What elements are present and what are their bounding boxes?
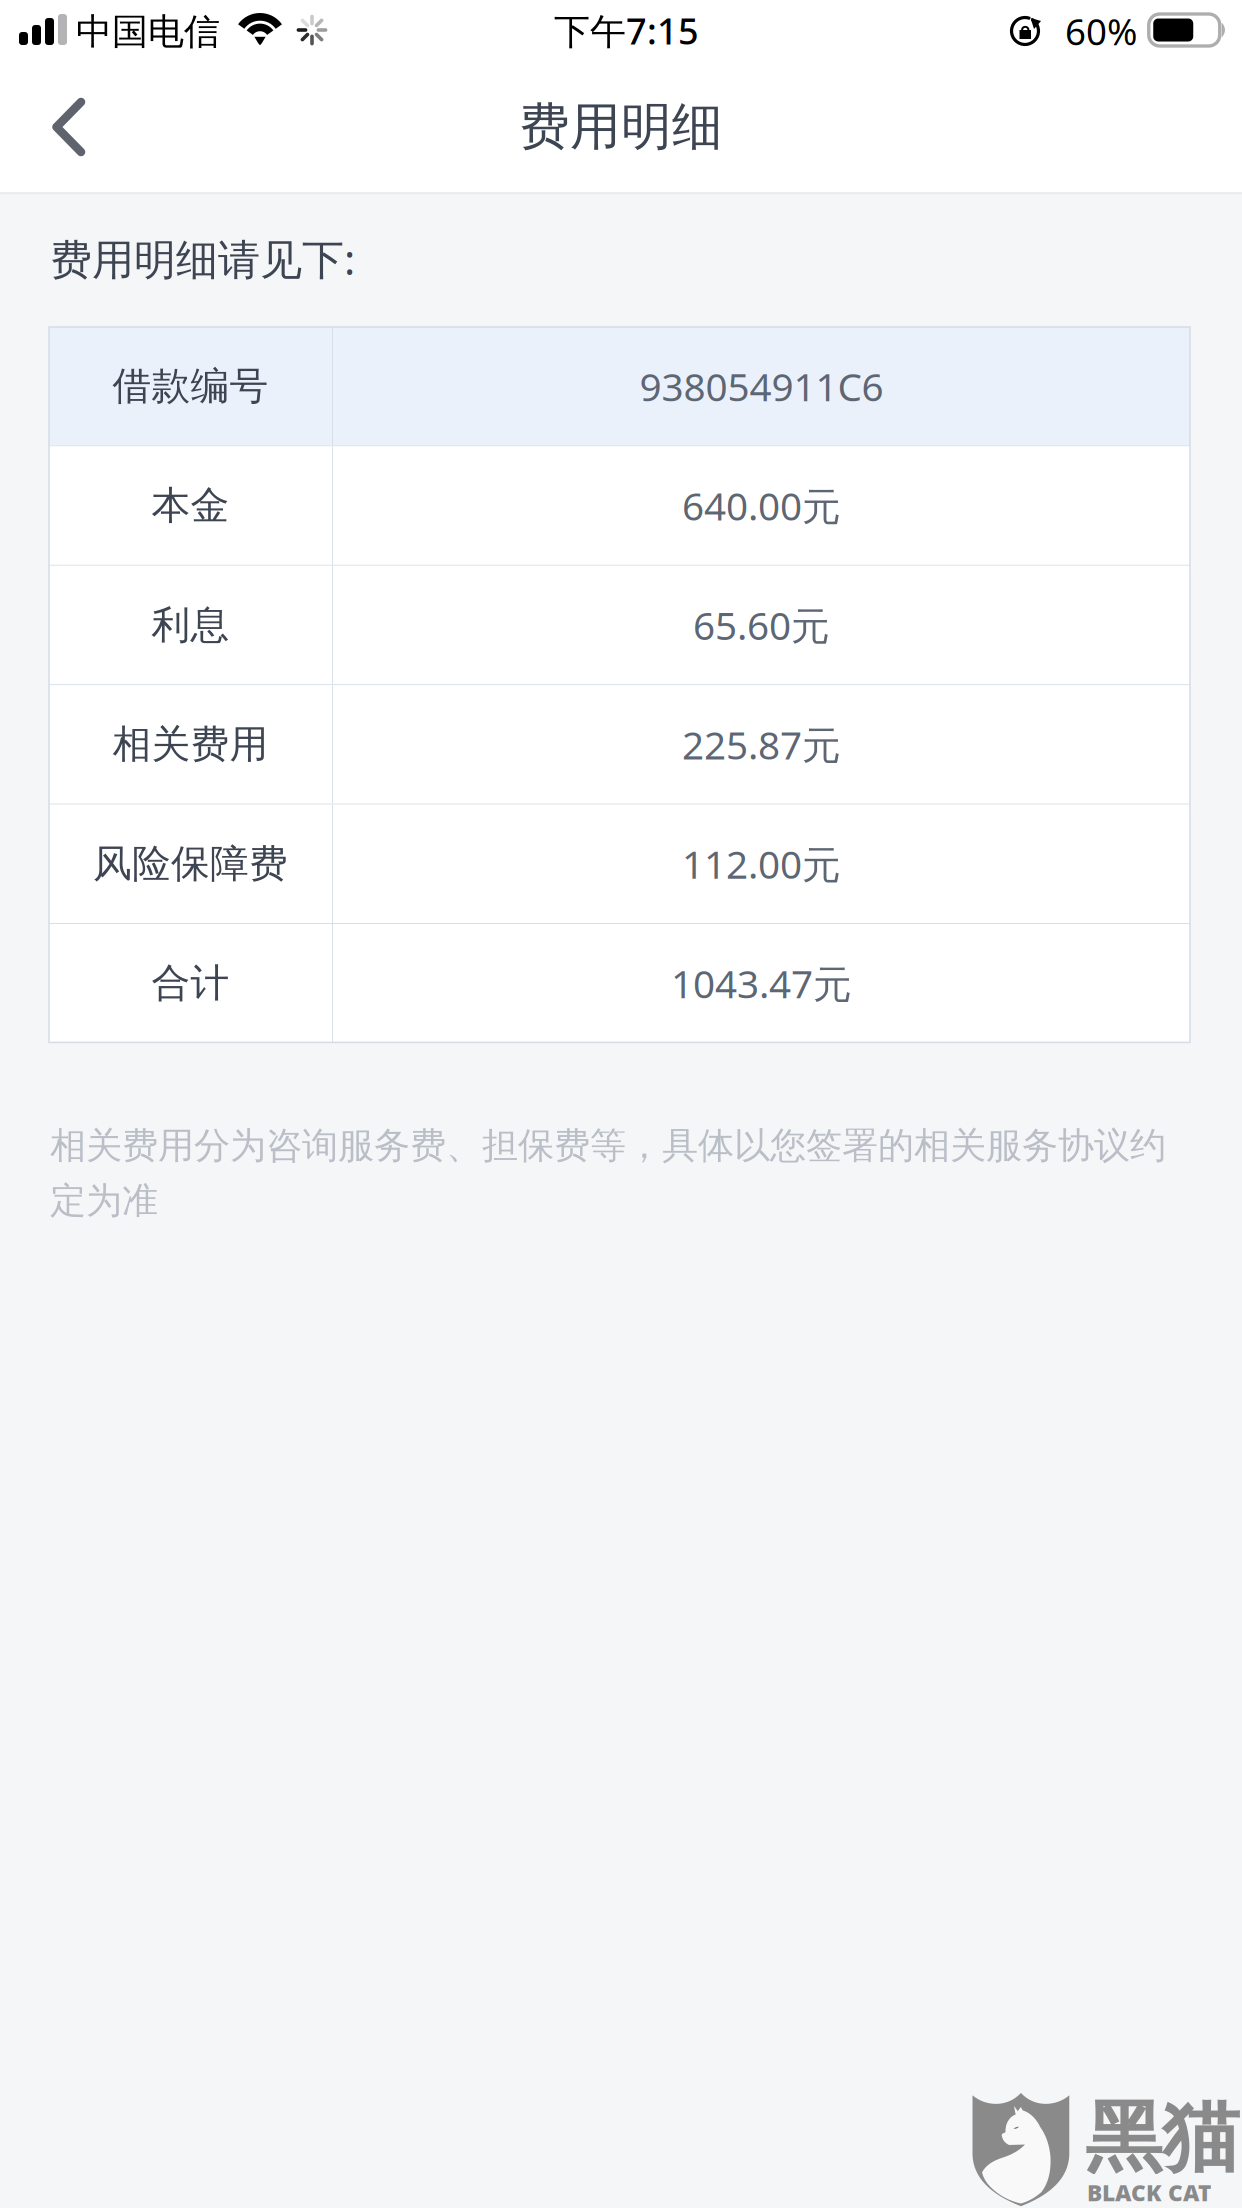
staticText: 60% [1065, 6, 1137, 56]
button[interactable]: Back [0, 62, 120, 192]
staticText: 中国电信 [76, 9, 220, 54]
staticText: 借款编号 [112, 362, 268, 410]
staticText: 下午7:15 [554, 6, 699, 55]
staticText: 本金 [151, 481, 229, 530]
staticText: 相关费用 [112, 720, 268, 769]
staticText: 相关费用分为咨询服务费、担保费等，具体以您签署的相关服务协议约定为准 [50, 1123, 1166, 1223]
staticText: 黑猫 [1085, 2089, 1239, 2186]
staticText: 风险保障费 [93, 839, 288, 888]
staticText: 640.00元 [682, 479, 841, 532]
staticText: 利息 [151, 601, 229, 649]
staticText: 225.87元 [682, 718, 841, 771]
staticText: 合计 [151, 959, 229, 1007]
staticText: 1043.47元 [671, 957, 852, 1010]
staticText: 112.00元 [682, 837, 841, 890]
staticText: BLACK CAT [1087, 2177, 1211, 2208]
staticText: 费用明细 [519, 95, 723, 159]
staticText: 938054911C6 [639, 360, 883, 413]
staticText: 费用明细请见下: [50, 230, 355, 287]
staticText: 65.60元 [693, 599, 830, 651]
